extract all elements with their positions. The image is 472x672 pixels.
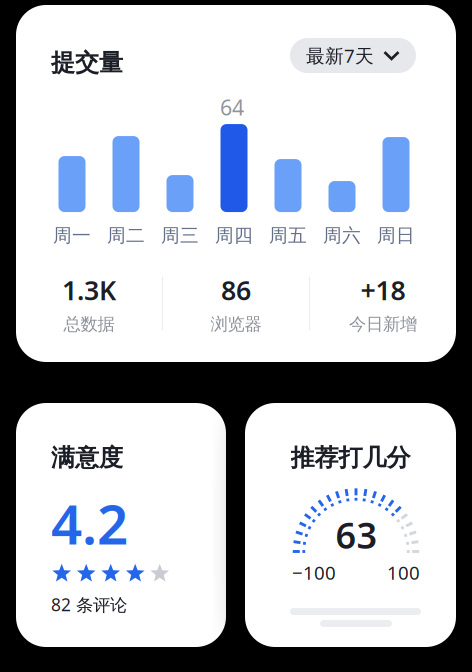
staticText: 今日新增 — [349, 314, 417, 335]
staticText: 最新7天 — [306, 43, 374, 68]
staticText: 总数据 — [63, 314, 114, 335]
staticText: 周四 — [215, 224, 253, 247]
button[interactable]: 最新7天 — [290, 38, 416, 73]
staticText: −100 — [292, 560, 336, 585]
staticText: 1.3K — [62, 272, 116, 307]
staticText: 100 — [387, 560, 420, 585]
staticText: 周三 — [161, 224, 199, 247]
staticText: +18 — [360, 272, 405, 307]
staticText: 满意度 — [51, 443, 123, 472]
staticText: 周二 — [107, 224, 145, 247]
staticText: 周日 — [377, 224, 415, 247]
staticText: 周一 — [53, 224, 91, 247]
staticText: 周六 — [323, 224, 361, 247]
staticText: 82 条评论 — [51, 593, 127, 616]
staticText: 周五 — [269, 224, 307, 247]
staticText: 64 — [220, 93, 244, 121]
staticText: 4.2 — [51, 487, 128, 560]
staticText: 86 — [221, 272, 251, 307]
staticText: 浏览器 — [210, 314, 261, 335]
staticText: 提交量 — [51, 48, 123, 77]
staticText: 推荐打几分 — [290, 443, 410, 472]
staticText: 63 — [335, 511, 377, 559]
